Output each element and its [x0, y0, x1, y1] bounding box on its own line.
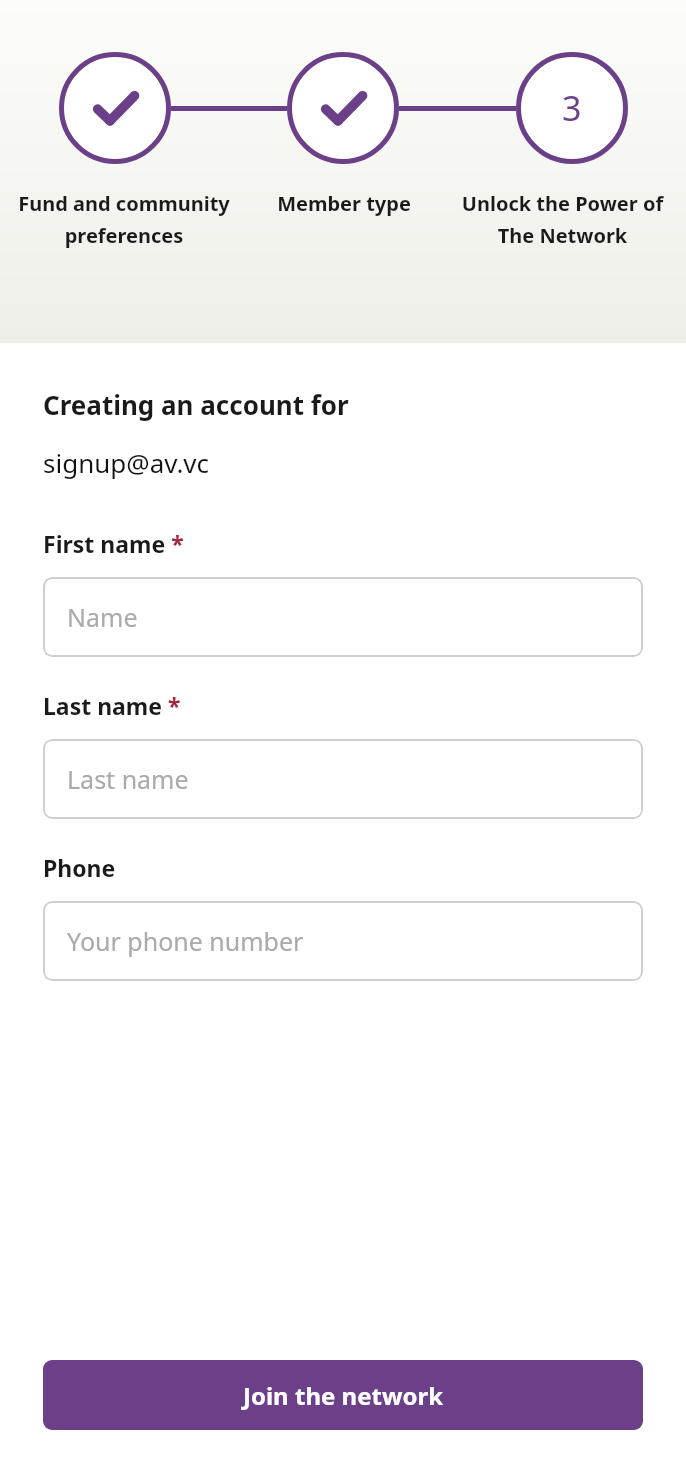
staticText: Fund and community preferences: [16, 190, 232, 249]
staticText: Name: [67, 600, 138, 634]
button[interactable]: Your phone number: [43, 901, 643, 981]
staticText: Creating an account for: [43, 387, 349, 422]
button[interactable]: Last name: [43, 739, 643, 819]
button[interactable]: 3: [516, 52, 628, 164]
staticText: Member type: [277, 190, 411, 217]
staticText: Last name: [67, 762, 189, 796]
staticText: Last name *: [43, 690, 181, 721]
staticText: 3: [562, 85, 582, 131]
staticText: Unlock the Power of The Network: [455, 190, 670, 249]
button[interactable]: Join the network: [43, 1360, 643, 1430]
staticText: Join the network: [243, 1379, 444, 1412]
staticText: Phone: [43, 852, 116, 883]
staticText: First name *: [43, 528, 184, 559]
button[interactable]: Name: [43, 577, 643, 657]
button[interactable]: [287, 52, 399, 164]
staticText: Your phone number: [67, 924, 304, 958]
button[interactable]: [59, 52, 171, 164]
staticText: signup@av.vc: [43, 445, 210, 480]
